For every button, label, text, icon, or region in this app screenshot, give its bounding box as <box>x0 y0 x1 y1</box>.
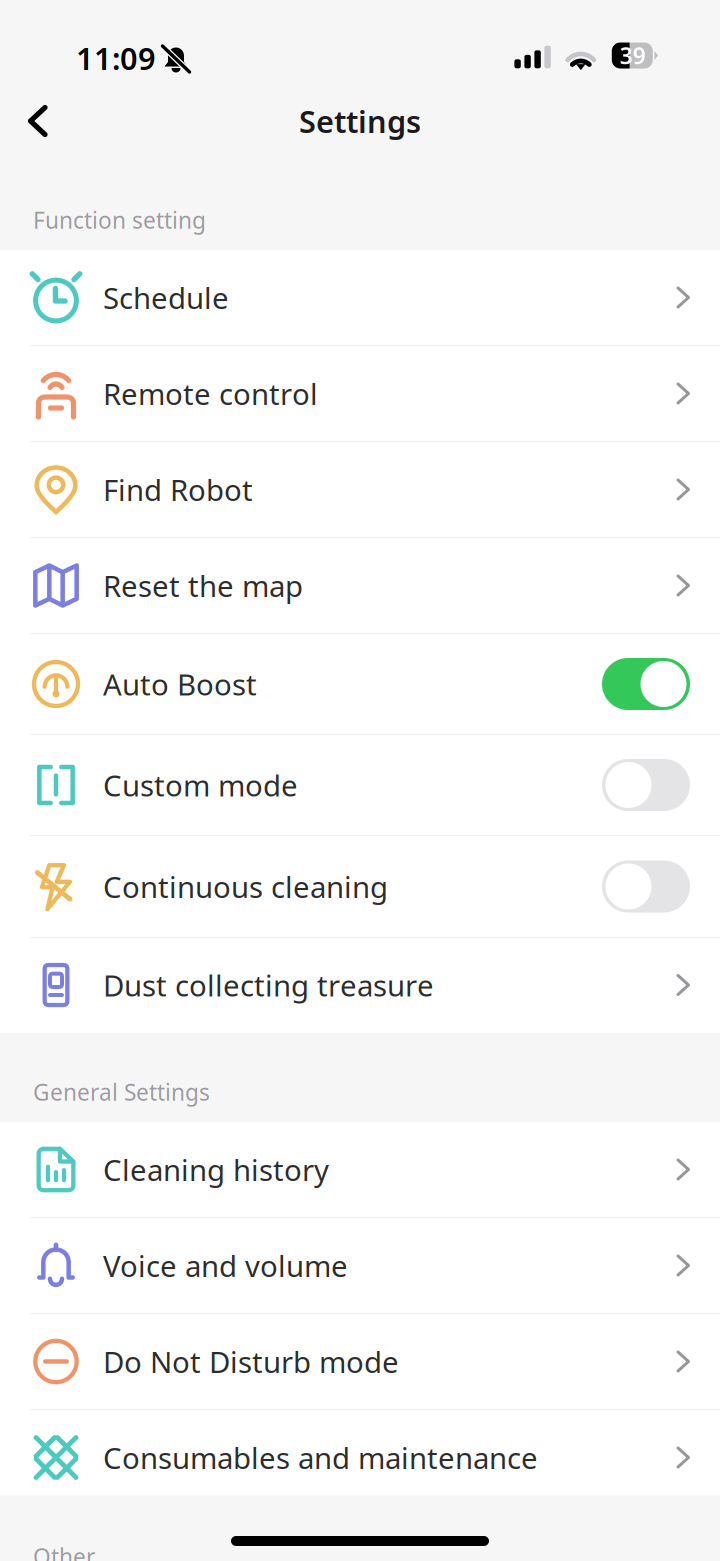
button[interactable]: Do Not Disturb mode <box>0 1314 720 1410</box>
button[interactable]: Back <box>0 92 78 150</box>
staticText: Reset the map <box>103 566 303 605</box>
button[interactable]: Custom mode <box>0 735 720 836</box>
staticText: 39 <box>620 40 646 70</box>
staticText: Consumables and maintenance <box>103 1438 538 1477</box>
staticText: Remote control <box>103 374 318 413</box>
staticText: Custom mode <box>103 765 298 804</box>
button[interactable]: Continuous cleaning <box>0 836 720 938</box>
staticText: Dust collecting treasure <box>103 965 434 1004</box>
staticText: Do Not Disturb mode <box>103 1342 399 1381</box>
button[interactable]: Consumables and maintenance <box>0 1410 720 1506</box>
button[interactable]: Cleaning history <box>0 1122 720 1218</box>
staticText: Settings <box>299 101 421 141</box>
staticText: 11:09 <box>76 38 156 78</box>
staticText: Auto Boost <box>103 664 257 703</box>
staticText: Find Robot <box>103 470 253 509</box>
button[interactable]: Remote control <box>0 346 720 442</box>
staticText: Function setting <box>33 205 206 235</box>
button[interactable]: Find Robot <box>0 442 720 538</box>
staticText: Other <box>33 1541 95 1561</box>
staticText: Cleaning history <box>103 1150 329 1189</box>
staticText: General Settings <box>33 1077 210 1107</box>
button[interactable]: Auto Boost <box>0 634 720 735</box>
staticText: Continuous cleaning <box>103 867 388 906</box>
button[interactable]: Dust collecting treasure <box>0 938 720 1033</box>
staticText: Voice and volume <box>103 1246 348 1285</box>
button[interactable]: Reset the map <box>0 538 720 634</box>
button[interactable]: Schedule <box>0 250 720 346</box>
staticText: Schedule <box>103 278 229 317</box>
button[interactable]: Voice and volume <box>0 1218 720 1314</box>
